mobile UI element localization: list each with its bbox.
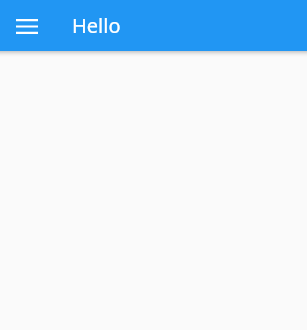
button[interactable]: Open navigation menu — [8, 7, 46, 45]
staticText: Hello — [72, 12, 121, 39]
